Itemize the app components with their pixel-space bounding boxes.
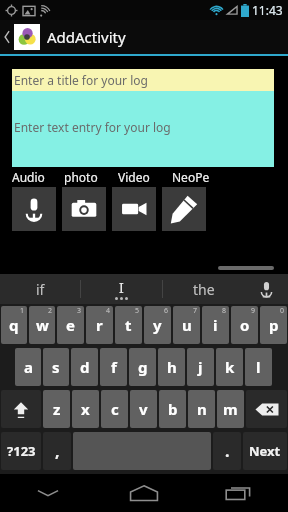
staticText: I — [119, 278, 124, 297]
staticText: Enter a title for your log — [14, 72, 148, 88]
staticText: p — [269, 315, 279, 335]
button[interactable]: t — [115, 306, 142, 344]
button[interactable]: Next — [243, 432, 287, 470]
staticText: o — [240, 315, 250, 335]
button[interactable]: . — [213, 432, 241, 470]
button[interactable]: p — [260, 306, 287, 344]
button[interactable]: q — [1, 306, 27, 344]
button[interactable]: c — [101, 390, 128, 428]
staticText: m — [223, 399, 238, 419]
button[interactable]: z — [43, 390, 70, 428]
staticText: 0 — [280, 306, 285, 316]
button[interactable]: y — [144, 306, 171, 344]
button[interactable]: e — [57, 306, 84, 344]
button[interactable]: Enter text entry for your log — [12, 91, 274, 167]
staticText: f — [111, 357, 117, 377]
staticText: q — [9, 315, 19, 335]
staticText: 11:43 — [252, 2, 283, 18]
button[interactable]: Hide keyboard — [0, 474, 96, 512]
button[interactable]: k — [216, 348, 243, 386]
staticText: 8 — [222, 306, 227, 316]
button[interactable]: m — [217, 390, 244, 428]
staticText: 4 — [106, 306, 111, 316]
button[interactable]: Enter a title for your log — [12, 69, 274, 91]
staticText: b — [168, 399, 178, 419]
button[interactable]: Voice input — [244, 274, 288, 304]
button[interactable]: b — [159, 390, 186, 428]
button[interactable]: s — [43, 348, 69, 386]
staticText: u — [182, 315, 192, 335]
staticText: v — [139, 399, 148, 419]
staticText: 7 — [193, 306, 198, 316]
button[interactable]: x — [72, 390, 99, 428]
staticText: z — [53, 399, 61, 419]
staticText: d — [80, 357, 90, 377]
staticText: 6 — [164, 306, 169, 316]
staticText: if — [36, 280, 45, 299]
button[interactable]: Video — [112, 187, 156, 231]
staticText: l — [256, 357, 261, 377]
staticText: Enter text entry for your log — [14, 119, 171, 135]
button[interactable]: AddActivity — [0, 20, 288, 54]
staticText: r — [96, 315, 103, 335]
button[interactable]: Recent apps — [192, 474, 288, 512]
staticText: t — [125, 315, 132, 335]
button[interactable]: f — [100, 348, 127, 386]
button[interactable]: Audio — [12, 187, 56, 231]
button[interactable]: v — [130, 390, 157, 428]
staticText: g — [138, 357, 148, 377]
staticText: n — [197, 399, 207, 419]
staticText: Audio — [12, 169, 45, 185]
staticText: 1 — [20, 306, 25, 316]
staticText: k — [225, 357, 235, 377]
button[interactable]: Pen — [162, 187, 206, 231]
button[interactable]: Photo — [62, 187, 106, 231]
staticText: 3 — [77, 306, 82, 316]
button[interactable]: o — [231, 306, 258, 344]
button[interactable]: a — [15, 348, 41, 386]
button[interactable]: if — [0, 274, 80, 304]
button[interactable]: g — [129, 348, 156, 386]
staticText: , — [55, 440, 60, 462]
staticText: x — [81, 399, 90, 419]
staticText: photo — [64, 169, 98, 185]
button[interactable]: n — [188, 390, 215, 428]
staticText: h — [167, 357, 177, 377]
button[interactable]: ?123 — [1, 432, 41, 470]
staticText: 9 — [251, 306, 256, 316]
button[interactable]: Home — [96, 474, 192, 512]
staticText: j — [198, 357, 203, 377]
button[interactable]: u — [173, 306, 200, 344]
staticText: ?123 — [7, 442, 36, 460]
button[interactable]: Shift — [1, 390, 41, 428]
staticText: AddActivity — [47, 27, 126, 47]
staticText: a — [24, 357, 33, 377]
staticText: Next — [249, 442, 281, 460]
staticText: s — [52, 357, 60, 377]
button[interactable]: r — [86, 306, 113, 344]
button[interactable]: j — [187, 348, 214, 386]
button[interactable]: Backspace — [246, 390, 287, 428]
staticText: w — [36, 315, 49, 335]
staticText: NeoPe — [172, 169, 210, 185]
staticText: e — [66, 315, 75, 335]
button[interactable]: d — [71, 348, 98, 386]
staticText: Video — [118, 169, 150, 185]
staticText: . — [225, 440, 230, 462]
staticText: the — [193, 280, 215, 299]
button[interactable]: l — [245, 348, 272, 386]
button[interactable]: , — [43, 432, 71, 470]
button[interactable]: I — [81, 274, 162, 304]
button[interactable]: h — [158, 348, 185, 386]
staticText: 5 — [135, 306, 140, 316]
button[interactable]: w — [29, 306, 55, 344]
button[interactable]: the — [163, 274, 244, 304]
staticText: y — [153, 315, 162, 335]
staticText: 2 — [48, 306, 53, 316]
button[interactable]: i — [202, 306, 229, 344]
staticText: c — [111, 399, 119, 419]
staticText: i — [213, 315, 218, 335]
